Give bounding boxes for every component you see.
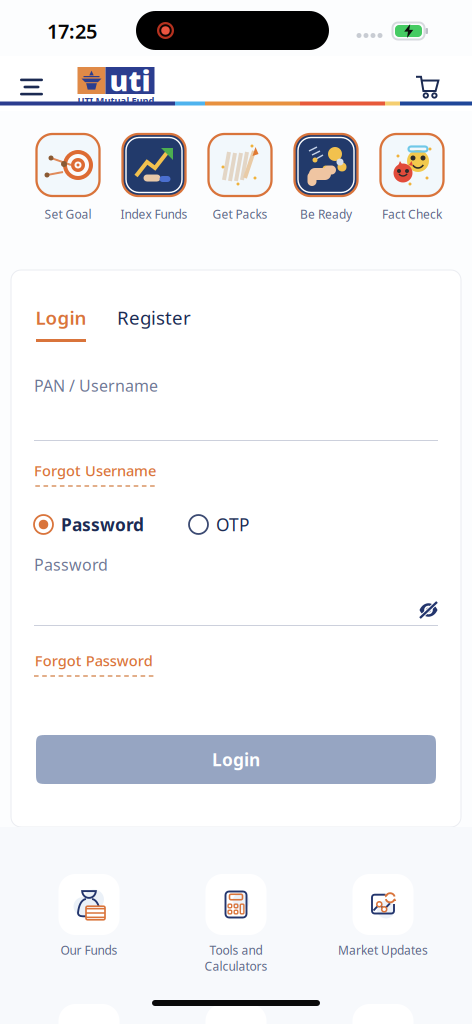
button[interactable]: Forgot Username <box>34 461 156 487</box>
button[interactable]: Scan <box>309 1004 456 1024</box>
button[interactable]: Cart <box>406 67 452 107</box>
button[interactable]: Market Updates <box>309 874 456 1004</box>
button[interactable]: Menu <box>9 67 54 107</box>
button[interactable]: Login <box>34 305 88 342</box>
staticText: Fact Check <box>382 206 442 222</box>
staticText: OTP <box>216 513 249 536</box>
staticText: 17:25 <box>47 18 97 44</box>
staticText: uti <box>109 62 150 99</box>
button[interactable]: Our Funds <box>15 874 162 1004</box>
staticText: Calculators <box>204 958 267 974</box>
button[interactable]: Fact Check <box>369 134 455 222</box>
staticText: Register <box>117 305 191 330</box>
staticText: PAN / Username <box>34 375 158 396</box>
staticText: Be Ready <box>300 206 352 222</box>
staticText: Index Funds <box>120 206 187 222</box>
button[interactable]: Register <box>88 305 191 342</box>
button[interactable]: Set Goal <box>25 134 111 222</box>
staticText: Forgot Username <box>34 461 156 480</box>
button[interactable]: Get Packs <box>197 134 283 222</box>
staticText: Forgot Password <box>35 651 153 670</box>
button[interactable]: Index Funds <box>111 134 197 222</box>
staticText: UTI Mutual Fund <box>77 94 154 107</box>
button[interactable]: Invest <box>162 1004 309 1024</box>
button[interactable]: Tools and <box>162 874 309 1004</box>
staticText: Market Updates <box>338 942 428 958</box>
staticText: Login <box>212 748 260 771</box>
button[interactable]: NAV <box>15 1004 162 1024</box>
button[interactable]: OTP <box>189 512 249 536</box>
button[interactable]: Forgot Password <box>34 651 153 677</box>
staticText: Tools and <box>209 942 262 958</box>
staticText: Our Funds <box>60 942 117 958</box>
button[interactable]: Password <box>34 512 144 536</box>
button[interactable]: Login <box>34 735 438 784</box>
staticText: Password <box>61 513 144 536</box>
staticText: Password <box>34 554 108 575</box>
staticText: Set Goal <box>44 206 91 222</box>
staticText: Login <box>35 305 86 330</box>
button[interactable]: Be Ready <box>283 134 369 222</box>
button[interactable]: Show password <box>419 601 438 619</box>
staticText: Get Packs <box>212 206 267 222</box>
